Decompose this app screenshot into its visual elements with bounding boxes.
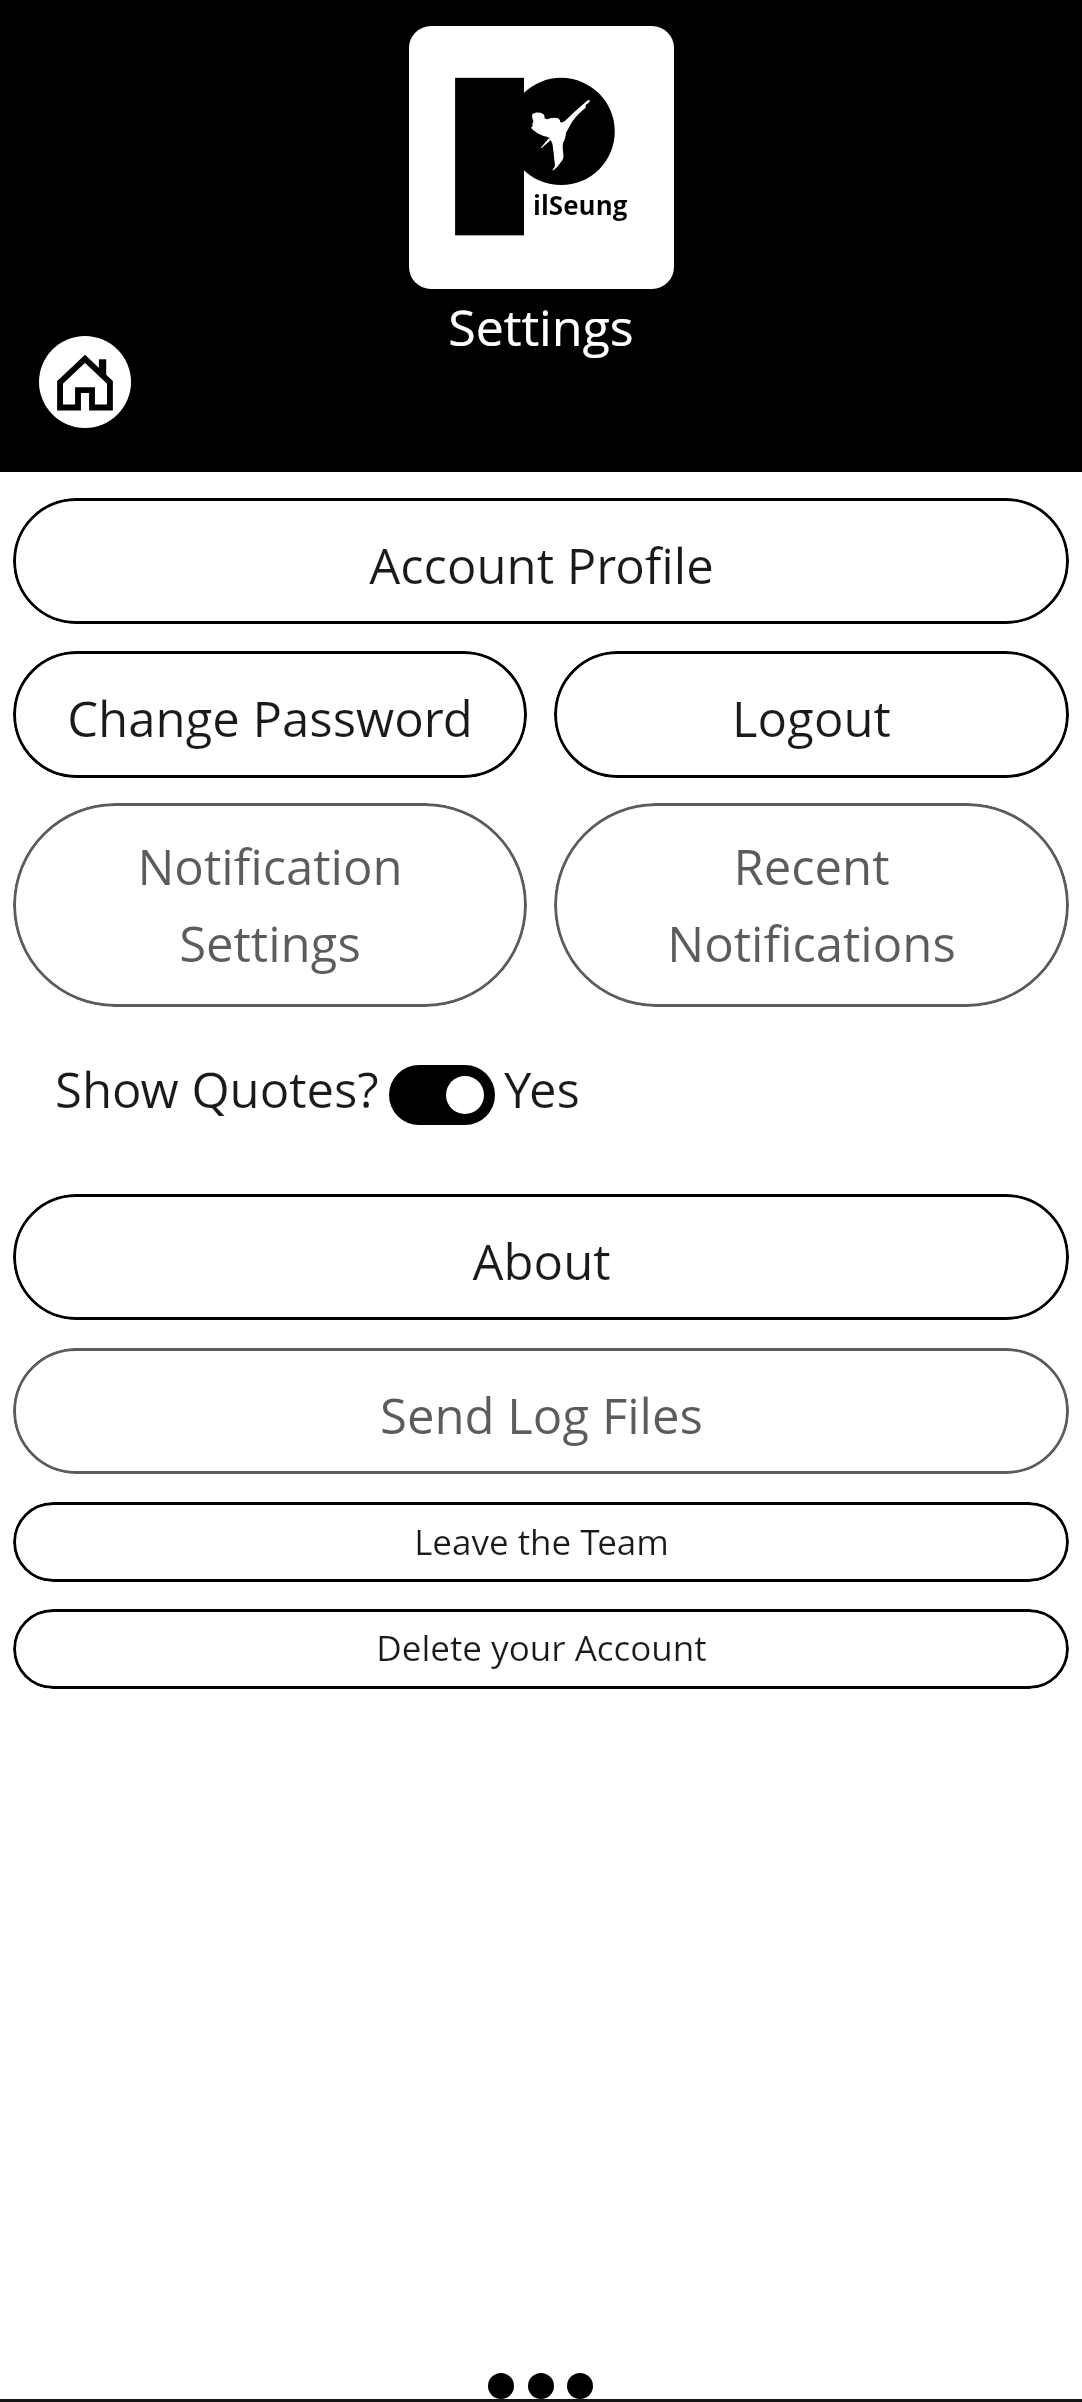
button[interactable]: Logout bbox=[554, 651, 1069, 778]
staticText: Change Password bbox=[67, 685, 473, 752]
staticText: Leave the Team bbox=[414, 1518, 669, 1566]
button[interactable]: Recent Notifications bbox=[554, 803, 1069, 1007]
staticText: Notification Settings bbox=[137, 833, 403, 976]
button[interactable]: Home bbox=[39, 336, 131, 428]
button[interactable]: Show quotes toggle, on bbox=[389, 1065, 495, 1125]
staticText: Settings bbox=[0, 293, 1082, 361]
button[interactable]: About bbox=[13, 1194, 1069, 1320]
button[interactable]: Notification Settings bbox=[13, 803, 527, 1007]
button[interactable]: Change Password bbox=[13, 651, 527, 778]
button[interactable]: Account Profile bbox=[13, 498, 1069, 624]
button[interactable]: Delete your Account bbox=[13, 1609, 1069, 1689]
staticText: Send Log Files bbox=[380, 1382, 703, 1449]
staticText: Logout bbox=[732, 685, 891, 752]
staticText: Delete your Account bbox=[376, 1624, 707, 1672]
staticText: Show Quotes? bbox=[55, 1056, 379, 1123]
staticText: About bbox=[472, 1228, 611, 1295]
staticText: Recent Notifications bbox=[667, 833, 956, 976]
button[interactable]: Send Log Files bbox=[13, 1348, 1069, 1474]
staticText: ilSeung bbox=[533, 187, 628, 222]
staticText: Account Profile bbox=[369, 532, 714, 599]
button[interactable]: Leave the Team bbox=[13, 1502, 1069, 1582]
staticText: Yes bbox=[504, 1056, 580, 1123]
